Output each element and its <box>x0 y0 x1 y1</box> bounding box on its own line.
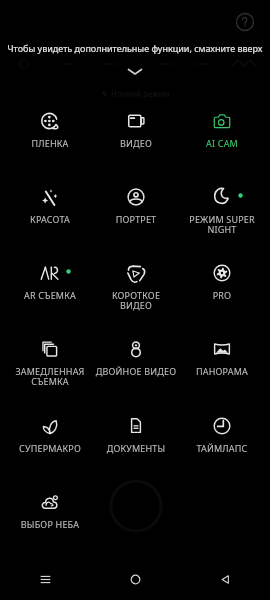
button[interactable]: ДВОЙНОЕ ВИДЕО <box>93 327 179 389</box>
staticText: КРАСОТА <box>9 213 91 225</box>
button[interactable]: ПАНОРАМА <box>179 327 265 389</box>
staticText: ТАЙМЛАПС <box>181 442 263 454</box>
button[interactable]: ТАЙМЛАПС <box>179 404 265 466</box>
staticText: Чтобы увидеть дополнительные функции, см… <box>0 42 270 54</box>
button[interactable]: Back <box>180 558 270 600</box>
staticText: Ночной режим <box>111 88 170 99</box>
staticText: ВИДЕО <box>95 137 177 149</box>
button[interactable]: ДОКУМЕНТЫ <box>93 404 179 466</box>
button[interactable]: PRO <box>179 251 265 313</box>
button[interactable]: ВИДЕО <box>93 99 179 161</box>
button[interactable]: ЗАМЕДЛЕННАЯ СЪЕМКА <box>7 327 93 389</box>
button[interactable]: ПЛЕНКА <box>7 99 93 161</box>
staticText: PRO <box>181 289 263 301</box>
button[interactable]: КРАСОТА <box>7 175 93 237</box>
staticText: КОРОТКОЕ ВИДЕО <box>95 289 177 311</box>
staticText: ВЫБОР НЕБА <box>9 518 91 530</box>
button[interactable]: Help <box>233 10 257 34</box>
staticText: ДВОЙНОЕ ВИДЕО <box>95 365 177 377</box>
button[interactable]: СУПЕРМАКРО <box>7 404 93 466</box>
staticText: СУПЕРМАКРО <box>9 442 91 454</box>
button[interactable]: Home <box>90 558 180 600</box>
button[interactable]: ВЫБОР НЕБА <box>7 480 93 542</box>
staticText: ПАНОРАМА <box>181 365 263 377</box>
button[interactable]: Recent apps <box>0 558 90 600</box>
staticText: ДОКУМЕНТЫ <box>95 442 177 454</box>
staticText: AI CAM <box>181 137 263 149</box>
staticText: ПЛЕНКА <box>9 137 91 149</box>
button[interactable]: ПОРТРЕТ <box>93 175 179 237</box>
button[interactable]: РЕЖИМ SUPER NIGHT <box>179 175 265 237</box>
button[interactable]: КОРОТКОЕ ВИДЕО <box>93 251 179 313</box>
staticText: ПОРТРЕТ <box>95 213 177 225</box>
staticText: ЗАМЕДЛЕННАЯ СЪЕМКА <box>9 365 91 387</box>
button[interactable]: AR СЪЕМКА <box>7 251 93 313</box>
button[interactable]: AI CAM <box>179 99 265 161</box>
staticText: РЕЖИМ SUPER NIGHT <box>181 213 263 235</box>
staticText: AR СЪЕМКА <box>9 289 91 301</box>
